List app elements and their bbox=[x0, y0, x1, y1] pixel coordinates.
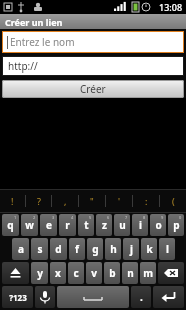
button[interactable]: s bbox=[31, 238, 48, 260]
staticText: x bbox=[55, 266, 61, 280]
staticText: 4 bbox=[71, 215, 74, 220]
staticText: ?123 bbox=[9, 292, 27, 303]
staticText: t bbox=[84, 218, 89, 232]
staticText: e bbox=[46, 218, 52, 232]
button[interactable]: x bbox=[50, 262, 66, 284]
staticText: a bbox=[18, 242, 24, 256]
staticText: 13:08 bbox=[159, 1, 183, 13]
button[interactable]: o bbox=[150, 214, 166, 236]
staticText: ' bbox=[118, 195, 121, 207]
staticText: 0 bbox=[179, 215, 182, 220]
button[interactable]: w bbox=[21, 214, 38, 236]
button[interactable]: Space bbox=[57, 286, 129, 308]
button[interactable]: Enter bbox=[153, 286, 184, 308]
button[interactable]: b bbox=[104, 262, 120, 284]
button[interactable]: d bbox=[50, 238, 67, 260]
staticText: Créer bbox=[80, 82, 106, 96]
staticText: d bbox=[55, 242, 62, 256]
button[interactable]: t bbox=[78, 214, 94, 236]
staticText: g bbox=[92, 242, 99, 256]
staticText: c bbox=[73, 266, 79, 280]
button[interactable]: . bbox=[131, 286, 151, 308]
button[interactable]: ' bbox=[106, 190, 132, 212]
staticText: k bbox=[146, 242, 153, 256]
button[interactable]: ! bbox=[0, 190, 25, 212]
staticText: 1 bbox=[14, 215, 17, 220]
staticText: http:// bbox=[8, 59, 38, 73]
staticText: h bbox=[110, 242, 117, 256]
staticText: l bbox=[166, 242, 169, 256]
staticText: 9 bbox=[161, 215, 164, 220]
staticText: v bbox=[91, 266, 97, 280]
button[interactable]: h bbox=[105, 238, 121, 260]
button[interactable]: j bbox=[123, 238, 139, 260]
button[interactable]: c bbox=[68, 262, 84, 284]
button[interactable]: z bbox=[96, 214, 112, 236]
staticText: 2 bbox=[33, 215, 36, 220]
staticText: f bbox=[75, 242, 79, 256]
staticText: m bbox=[143, 266, 153, 280]
staticText: : bbox=[145, 195, 148, 207]
staticText: Créer un lien bbox=[5, 16, 63, 28]
button[interactable]: Backspace bbox=[158, 262, 184, 284]
button[interactable]: http:// bbox=[2, 56, 184, 76]
staticText: , bbox=[64, 195, 67, 207]
staticText: s bbox=[37, 242, 43, 256]
button[interactable]: ( bbox=[160, 190, 186, 212]
staticText: 5 bbox=[89, 215, 92, 220]
staticText: . bbox=[140, 290, 143, 304]
button[interactable]: e bbox=[40, 214, 57, 236]
staticText: b bbox=[109, 266, 116, 280]
button[interactable]: v bbox=[86, 262, 102, 284]
button[interactable]: : bbox=[133, 190, 159, 212]
button[interactable]: q bbox=[2, 214, 19, 236]
button[interactable]: u bbox=[114, 214, 130, 236]
button[interactable]: a bbox=[12, 238, 29, 260]
button[interactable]: y bbox=[31, 262, 48, 284]
button[interactable]: Voice input bbox=[35, 286, 55, 308]
button[interactable]: l bbox=[159, 238, 175, 260]
staticText: 7 bbox=[125, 215, 128, 220]
staticText: Entrez le nom bbox=[10, 35, 75, 49]
staticText: 3 bbox=[52, 215, 55, 220]
staticText: o bbox=[155, 218, 162, 232]
staticText: 6 bbox=[107, 215, 110, 220]
staticText: ? bbox=[37, 195, 41, 207]
button[interactable]: g bbox=[87, 238, 103, 260]
button[interactable]: n bbox=[122, 262, 138, 284]
staticText: " bbox=[90, 195, 94, 207]
button[interactable]: Shift bbox=[2, 262, 29, 284]
button[interactable]: Créer bbox=[2, 80, 184, 98]
button[interactable]: , bbox=[52, 190, 78, 212]
button[interactable]: m bbox=[140, 262, 156, 284]
button[interactable]: " bbox=[79, 190, 105, 212]
button[interactable]: ?123 bbox=[2, 286, 33, 308]
staticText: ( bbox=[172, 195, 175, 207]
button[interactable]: k bbox=[141, 238, 157, 260]
button[interactable]: i bbox=[132, 214, 148, 236]
staticText: ! bbox=[11, 195, 14, 207]
staticText: q bbox=[7, 218, 14, 232]
staticText: p bbox=[173, 218, 180, 232]
button[interactable]: r bbox=[59, 214, 76, 236]
button[interactable]: f bbox=[69, 238, 85, 260]
staticText: y bbox=[37, 266, 43, 280]
staticText: r bbox=[65, 218, 70, 232]
button[interactable]: Entrez le nom bbox=[2, 31, 184, 53]
staticText: w bbox=[25, 218, 34, 232]
staticText: j bbox=[130, 242, 133, 256]
staticText: i bbox=[139, 218, 142, 232]
staticText: n bbox=[127, 266, 134, 280]
button[interactable]: ? bbox=[26, 190, 51, 212]
button[interactable]: p bbox=[168, 214, 184, 236]
staticText: z bbox=[102, 218, 107, 232]
staticText: u bbox=[119, 218, 126, 232]
staticText: 8 bbox=[143, 215, 146, 220]
